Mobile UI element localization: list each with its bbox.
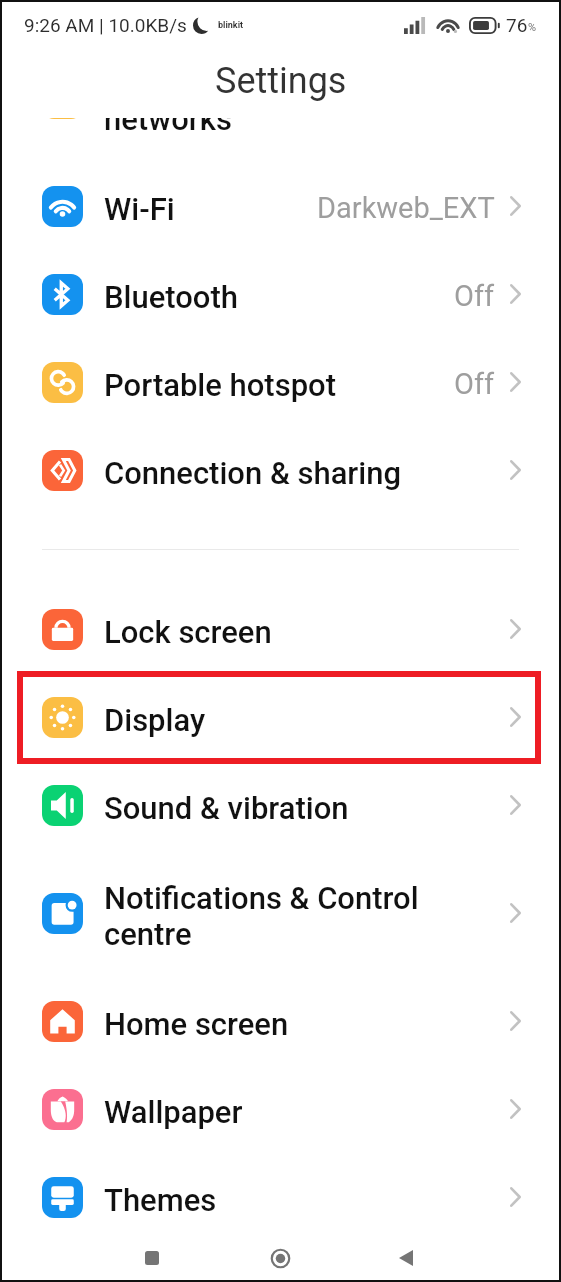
button[interactable]: Portable hotspot (2, 338, 559, 426)
staticText: Lock screen (104, 614, 510, 650)
button[interactable]: Wi-Fi (2, 162, 559, 250)
staticText: Display (104, 702, 510, 738)
button[interactable]: Recents (109, 1233, 195, 1282)
staticText: Themes (104, 1182, 510, 1218)
staticText: Off (454, 367, 495, 401)
staticText: Bluetooth (104, 279, 454, 315)
staticText: Sound & vibration (104, 790, 510, 826)
staticText: Settings (215, 60, 347, 102)
button[interactable]: Connection & sharing (2, 426, 559, 514)
button[interactable]: Notifications & Control centre (2, 849, 559, 977)
button[interactable]: Themes (2, 1153, 559, 1241)
button[interactable]: Bluetooth (2, 250, 559, 338)
button[interactable]: Back (363, 1233, 449, 1282)
staticText: % (528, 21, 537, 34)
staticText: 76 (506, 14, 528, 36)
button[interactable]: Display (2, 673, 559, 761)
button[interactable]: Wallpaper (2, 1065, 559, 1153)
button[interactable]: SIM cards & mobile networks (2, 118, 559, 162)
staticText: Portable hotspot (104, 367, 454, 403)
staticText: 9:26 AM | 10.0KB/s (24, 14, 187, 36)
staticText: Off (454, 279, 495, 313)
staticText: Connection & sharing (104, 455, 510, 491)
staticText: Darkweb_EXT (317, 191, 495, 225)
button[interactable]: Sound & vibration (2, 761, 559, 849)
button[interactable]: Home screen (2, 977, 559, 1065)
staticText: blinkit (218, 20, 244, 31)
staticText: Notifications & Control centre (104, 880, 510, 953)
staticText: Wallpaper (104, 1094, 510, 1130)
button[interactable]: Lock screen (2, 585, 559, 673)
staticText: Home screen (104, 1006, 510, 1042)
staticText: SIM cards & mobile networks (104, 118, 510, 138)
staticText: Wi-Fi (104, 191, 317, 227)
button[interactable]: Home (237, 1233, 323, 1282)
